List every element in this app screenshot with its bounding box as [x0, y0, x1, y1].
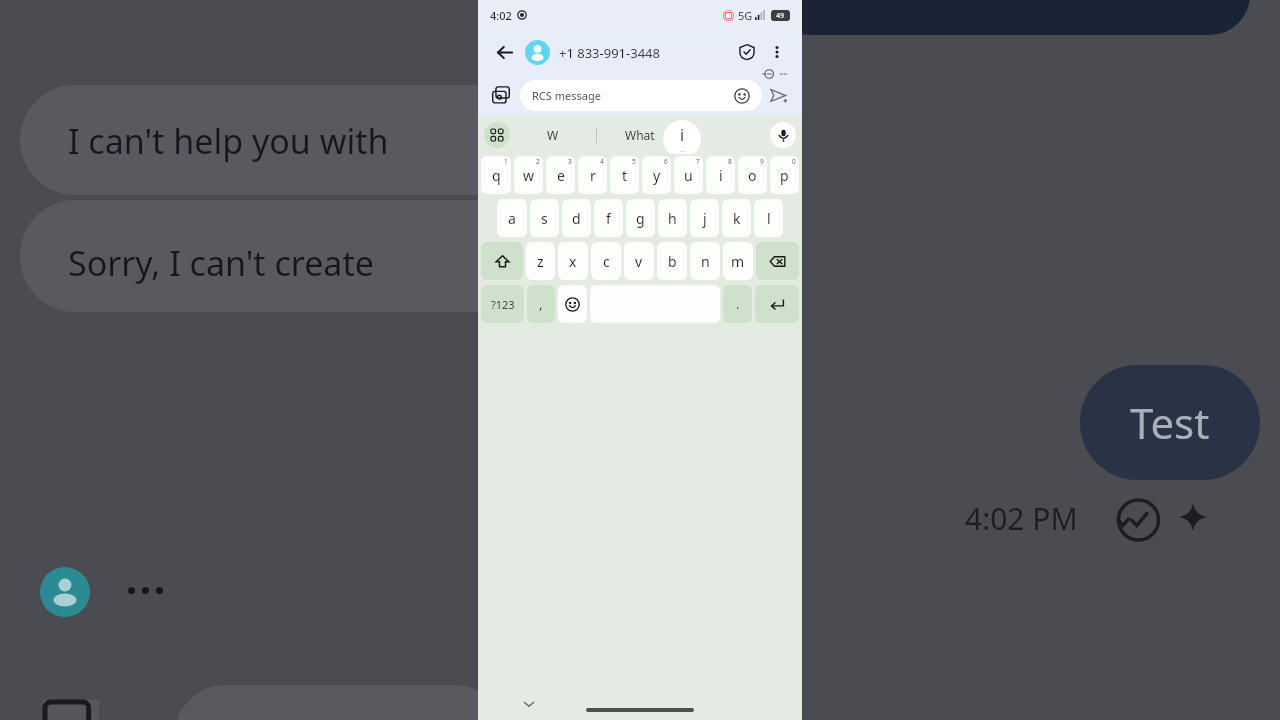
button[interactable]: n [690, 242, 720, 280]
staticText: ?123 [491, 297, 515, 312]
button[interactable]: f [594, 199, 623, 237]
button[interactable]: What [597, 116, 683, 154]
button[interactable]: x [558, 242, 588, 280]
staticText: x [569, 252, 577, 271]
button[interactable]: w [514, 156, 543, 194]
staticText: c [603, 252, 610, 271]
staticText: f [606, 209, 611, 228]
staticText: 7 [696, 157, 700, 166]
staticText: 6 [664, 157, 668, 166]
button[interactable]: , [527, 285, 555, 323]
staticText: l [767, 209, 771, 228]
staticText: 4 [600, 157, 604, 166]
button[interactable]: h [658, 199, 687, 237]
staticText: RCS message [532, 88, 734, 103]
button[interactable]: z [526, 242, 555, 280]
staticText: 4:02 PM [965, 498, 1078, 539]
staticText: i [719, 166, 723, 185]
staticText: u [684, 166, 693, 185]
button[interactable]: t [610, 156, 639, 194]
button[interactable]: l [754, 199, 783, 237]
staticText: b [668, 252, 677, 271]
button[interactable]: q [481, 156, 511, 194]
staticText: a [508, 209, 516, 228]
button[interactable]: y [642, 156, 671, 194]
button[interactable]: p [770, 156, 799, 194]
staticText: m [731, 252, 745, 271]
staticText: 5 [632, 157, 636, 166]
button[interactable]: v [624, 242, 654, 280]
staticText: h [668, 209, 677, 228]
button[interactable]: Send [762, 79, 794, 111]
button[interactable]: c [591, 242, 621, 280]
button[interactable]: Attach media [486, 80, 516, 110]
button[interactable]: a [497, 199, 527, 237]
staticText: Test [1130, 394, 1210, 451]
button[interactable]: RCS message [520, 80, 762, 111]
staticText: o [748, 166, 757, 185]
button[interactable]: More options [762, 37, 792, 67]
button[interactable]: m [723, 242, 753, 280]
staticText: y [653, 166, 661, 185]
button[interactable]: e [546, 156, 575, 194]
staticText: 5G [738, 8, 753, 23]
staticText: W [547, 127, 559, 143]
staticText: ... [680, 146, 685, 154]
staticText: r [590, 166, 596, 185]
staticText: w [523, 166, 535, 185]
button[interactable]: Backspace [756, 242, 799, 280]
button[interactable]: Emoji [558, 285, 587, 323]
staticText: k [733, 209, 741, 228]
button[interactable]: W [510, 116, 596, 154]
button[interactable]: Voice input [770, 122, 796, 148]
button[interactable]: Enter [755, 285, 799, 323]
staticText: 8 [728, 157, 732, 166]
staticText: 4:02 [490, 8, 512, 23]
staticText: e [557, 166, 565, 185]
staticText: 0 [792, 157, 796, 166]
staticText: Sorry, I can't create [68, 240, 374, 286]
button[interactable]: Toolbar [484, 122, 510, 148]
button[interactable]: b [657, 242, 687, 280]
staticText: p [780, 166, 789, 185]
staticText: q [492, 166, 501, 185]
button[interactable]: +1 833-991-3448 [525, 40, 732, 65]
button[interactable]: j [690, 199, 719, 237]
button[interactable]: k [722, 199, 751, 237]
staticText: 9 [760, 157, 764, 166]
staticText: . [736, 295, 740, 313]
staticText: 1 [504, 157, 508, 166]
staticText: +1 833-991-3448 [559, 44, 660, 62]
staticText: 2 [536, 157, 540, 166]
button[interactable]: g [626, 199, 655, 237]
button[interactable]: i [663, 120, 701, 158]
staticText: i [680, 124, 685, 146]
button[interactable]: u [674, 156, 703, 194]
button[interactable]: o [738, 156, 767, 194]
staticText: n [701, 252, 710, 271]
button[interactable]: Hide keyboard [519, 694, 539, 714]
staticText: s [541, 209, 548, 228]
button[interactable]: Verified [732, 37, 762, 67]
staticText: d [572, 209, 581, 228]
staticText: 3 [568, 157, 572, 166]
button[interactable]: d [562, 199, 591, 237]
button[interactable]: i [706, 156, 735, 194]
staticText: z [537, 252, 544, 271]
button[interactable]: r [578, 156, 607, 194]
button[interactable]: Back [488, 36, 520, 68]
staticText: t [622, 166, 628, 185]
button[interactable]: . [723, 285, 752, 323]
staticText: j [703, 209, 707, 228]
staticText: v [635, 252, 643, 271]
staticText: What [625, 127, 655, 143]
staticText: , [539, 295, 543, 313]
button[interactable]: s [530, 199, 559, 237]
staticText: g [636, 209, 645, 228]
staticText: I can't help you with [68, 118, 389, 164]
button[interactable]: Shift [481, 242, 523, 280]
button[interactable]: ?123 [481, 285, 524, 323]
staticText: 49 [776, 11, 785, 21]
